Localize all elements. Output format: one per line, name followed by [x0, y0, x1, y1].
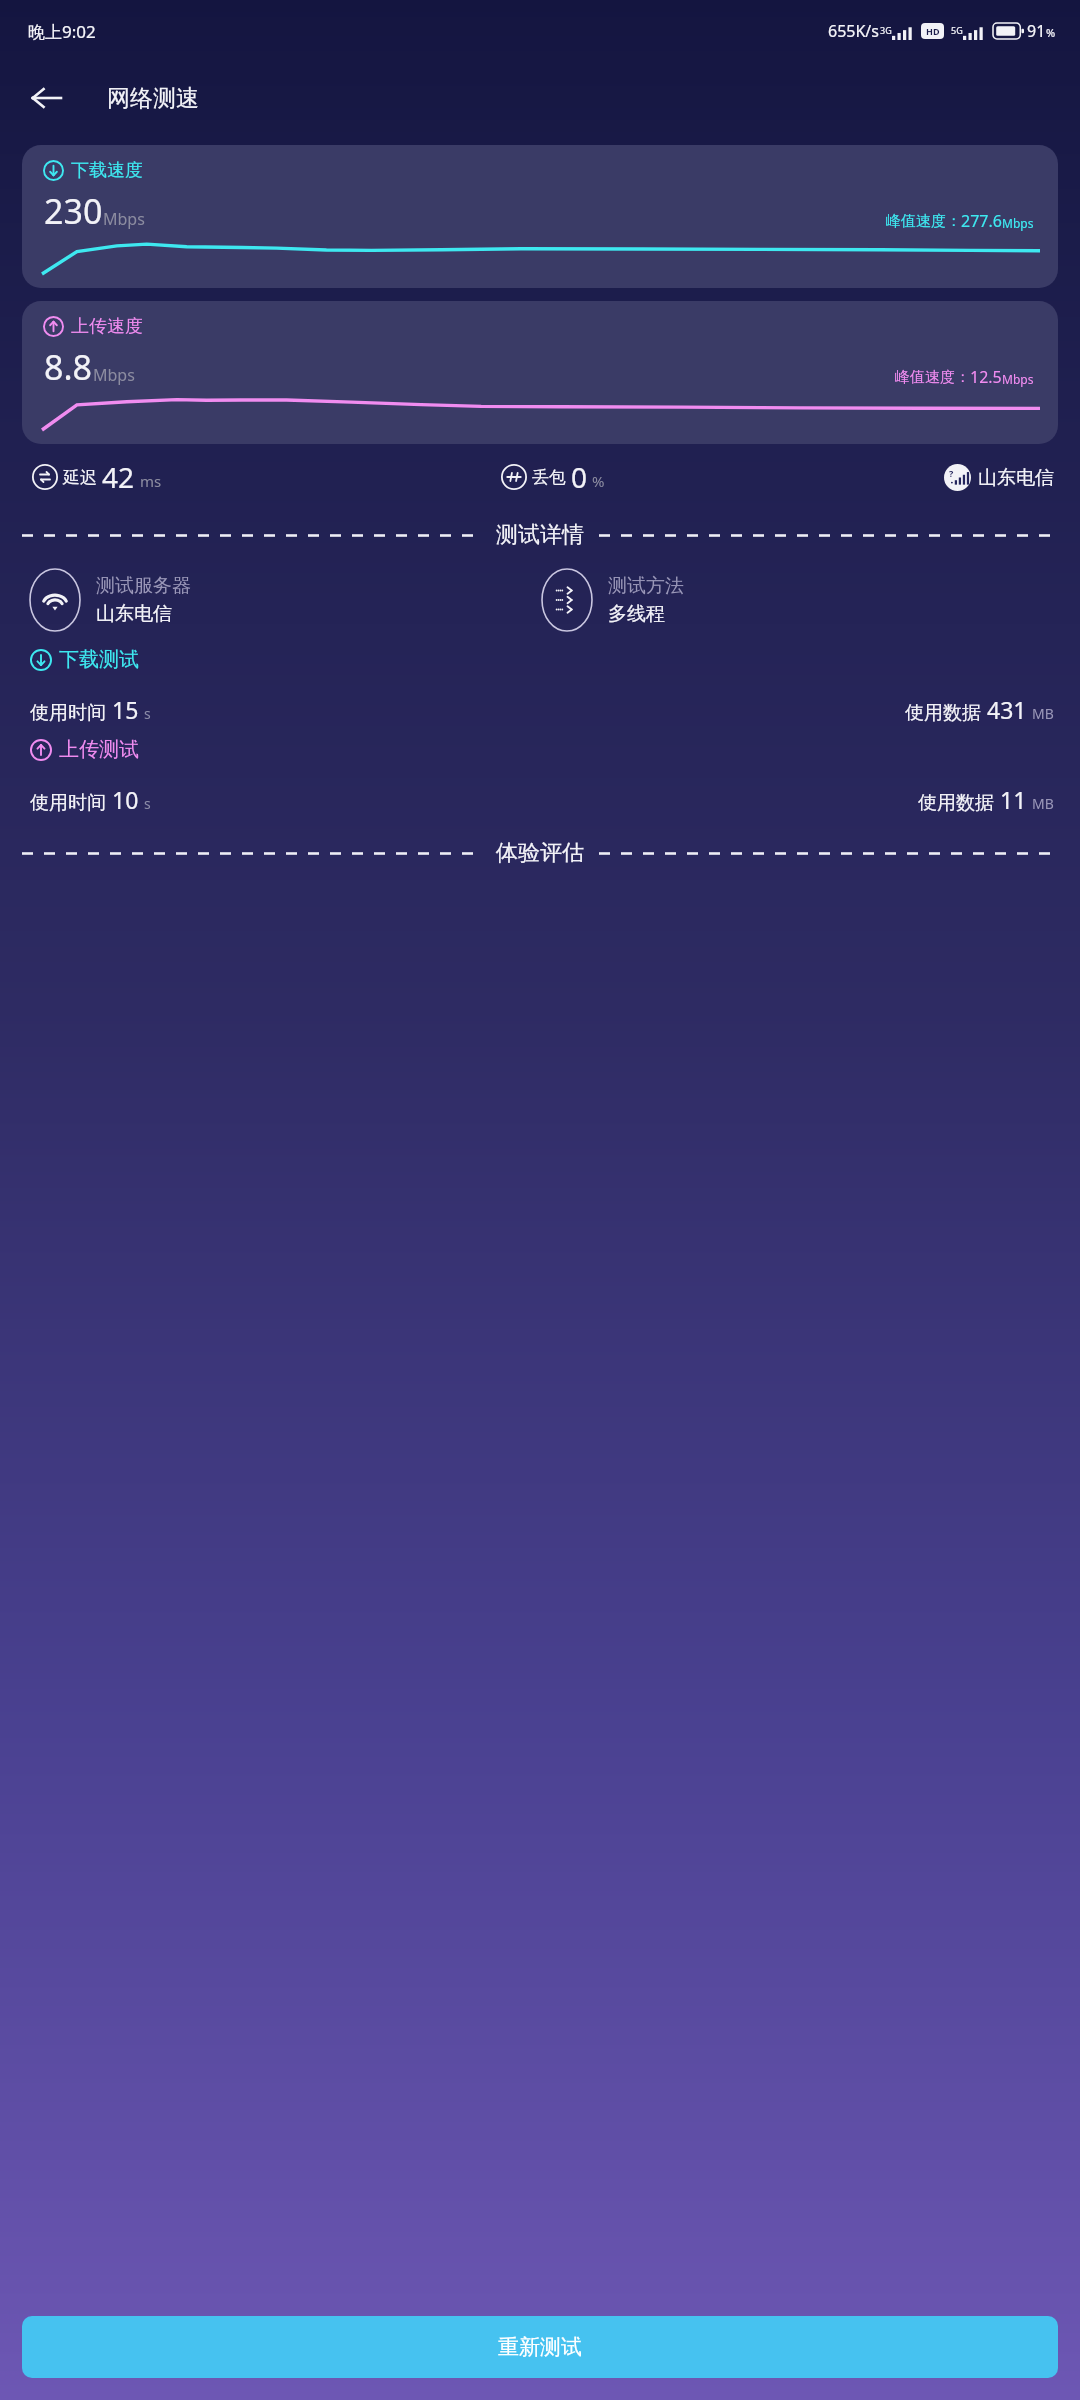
staticText: 使用时间: [30, 701, 106, 725]
staticText: 15: [112, 694, 139, 725]
staticText: Mbps: [1002, 215, 1034, 231]
staticText: 8.8: [44, 344, 93, 390]
staticText: ms: [140, 471, 162, 491]
button[interactable]: 丢包: [501, 458, 605, 496]
staticText: 延迟: [63, 467, 97, 488]
staticText: 5G: [951, 24, 963, 36]
button[interactable]: 测试服务器: [30, 569, 542, 631]
staticText: 测试服务器: [96, 574, 191, 598]
button[interactable]: ?: [944, 464, 1054, 491]
staticText: 277.6: [961, 210, 1002, 232]
staticText: 使用数据: [918, 791, 994, 815]
button[interactable]: 延迟: [32, 458, 162, 496]
staticText: s: [144, 704, 151, 723]
staticText: 晚上9:02: [28, 20, 96, 43]
staticText: 重新测试: [498, 2334, 582, 2360]
staticText: 下载测试: [59, 647, 139, 672]
staticText: 体验评估: [496, 839, 584, 867]
staticText: 0: [571, 458, 588, 496]
button[interactable]: 返回: [18, 70, 74, 126]
staticText: 丢包: [532, 467, 566, 488]
staticText: 上传测试: [59, 737, 139, 762]
staticText: 10: [112, 784, 139, 815]
staticText: Mbps: [103, 208, 145, 230]
staticText: HD: [926, 25, 940, 37]
staticText: 山东电信: [978, 466, 1054, 490]
staticText: 230: [44, 188, 103, 234]
staticText: 3G: [880, 24, 892, 36]
staticText: 12.5: [970, 366, 1002, 388]
staticText: 多线程: [608, 602, 665, 626]
staticText: 使用时间: [30, 791, 106, 815]
staticText: 测试详情: [496, 521, 584, 549]
button[interactable]: 上传速度: [22, 301, 1058, 444]
staticText: s: [144, 794, 151, 813]
staticText: %: [1046, 25, 1056, 40]
staticText: 峰值速度：: [886, 212, 961, 231]
staticText: MB: [1032, 794, 1054, 813]
staticText: 下载速度: [71, 159, 143, 182]
staticText: 上传速度: [71, 315, 143, 338]
staticText: 42: [102, 458, 135, 496]
button[interactable]: 下载速度: [22, 145, 1058, 288]
staticText: 431: [987, 694, 1027, 725]
staticText: 测试方法: [608, 574, 684, 598]
staticText: MB: [1032, 704, 1054, 723]
button[interactable]: 测试方法: [542, 569, 1054, 631]
staticText: %: [592, 471, 605, 491]
staticText: Mbps: [1002, 371, 1034, 387]
staticText: 91: [1027, 20, 1046, 42]
staticText: 使用数据: [905, 701, 981, 725]
staticText: 11: [1000, 784, 1027, 815]
button[interactable]: 重新测试: [22, 2316, 1058, 2378]
staticText: 山东电信: [96, 602, 172, 626]
staticText: 网络测速: [107, 84, 199, 113]
staticText: Mbps: [93, 364, 135, 386]
staticText: 655K/s: [828, 20, 879, 42]
staticText: 峰值速度：: [895, 368, 970, 387]
staticText: ?: [949, 467, 954, 479]
